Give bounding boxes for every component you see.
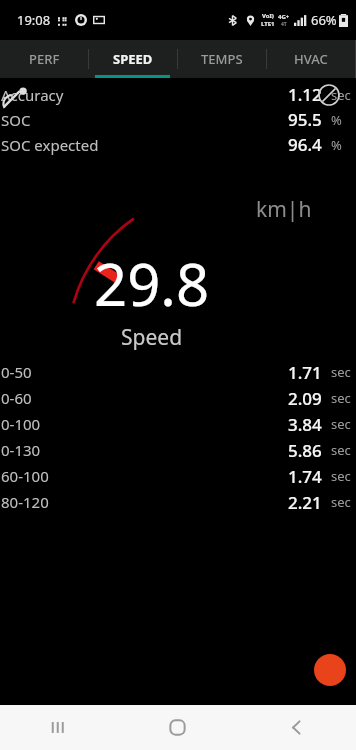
- staticText: 66%: [311, 11, 337, 29]
- staticText: HVAC: [294, 50, 328, 68]
- staticText: 0-60: [1, 388, 32, 408]
- button[interactable]: HVAC: [266, 40, 355, 78]
- button[interactable]: Record: [314, 654, 346, 686]
- staticText: 3.84: [288, 413, 322, 436]
- staticText: sec: [331, 467, 351, 485]
- button[interactable]: 0-60: [0, 385, 356, 411]
- button[interactable]: 60-100: [0, 463, 356, 489]
- staticText: 1.12: [288, 83, 322, 106]
- button[interactable]: 0-50: [0, 359, 356, 385]
- button[interactable]: TEMPS: [177, 40, 266, 78]
- staticText: VoI): [262, 12, 274, 20]
- button[interactable]: Back: [237, 705, 356, 750]
- staticText: 0-130: [1, 440, 41, 460]
- button[interactable]: 0-130: [0, 437, 356, 463]
- staticText: 1.71: [288, 361, 322, 384]
- staticText: %: [331, 111, 342, 129]
- staticText: LTE1: [261, 20, 275, 28]
- staticText: 4G+: [278, 13, 290, 21]
- staticText: sec: [331, 86, 351, 104]
- staticText: 2.21: [288, 491, 322, 514]
- staticText: 0-50: [1, 362, 32, 382]
- staticText: 0-100: [1, 414, 41, 434]
- button[interactable]: SPEED: [88, 40, 177, 78]
- staticText: km|h: [256, 195, 312, 224]
- staticText: Accuracy: [1, 85, 64, 105]
- staticText: SPEED: [113, 50, 153, 68]
- staticText: 60-100: [1, 466, 49, 486]
- staticText: SOC expected: [1, 135, 99, 155]
- staticText: 1.74: [288, 465, 322, 488]
- staticText: sec: [331, 389, 351, 407]
- button[interactable]: Home: [118, 705, 237, 750]
- staticText: TEMPS: [201, 50, 243, 68]
- staticText: 29.8: [94, 244, 210, 323]
- staticText: sec: [331, 441, 351, 459]
- staticText: 4T: [281, 21, 287, 28]
- staticText: sec: [331, 363, 351, 381]
- staticText: 19:08: [17, 11, 51, 29]
- staticText: 96.4: [288, 133, 322, 156]
- staticText: sec: [331, 415, 351, 433]
- staticText: 5.86: [288, 439, 322, 462]
- button[interactable]: PERF: [0, 40, 88, 78]
- staticText: Speed: [121, 323, 183, 352]
- staticText: PERF: [29, 50, 60, 68]
- staticText: 80-120: [1, 492, 49, 512]
- staticText: 2.09: [288, 387, 322, 410]
- staticText: sec: [331, 493, 351, 511]
- button[interactable]: 0-100: [0, 411, 356, 437]
- staticText: SOC: [1, 110, 31, 130]
- button[interactable]: 80-120: [0, 489, 356, 515]
- button[interactable]: Recent apps: [0, 705, 118, 750]
- staticText: %: [331, 136, 342, 154]
- staticText: 95.5: [288, 108, 322, 131]
